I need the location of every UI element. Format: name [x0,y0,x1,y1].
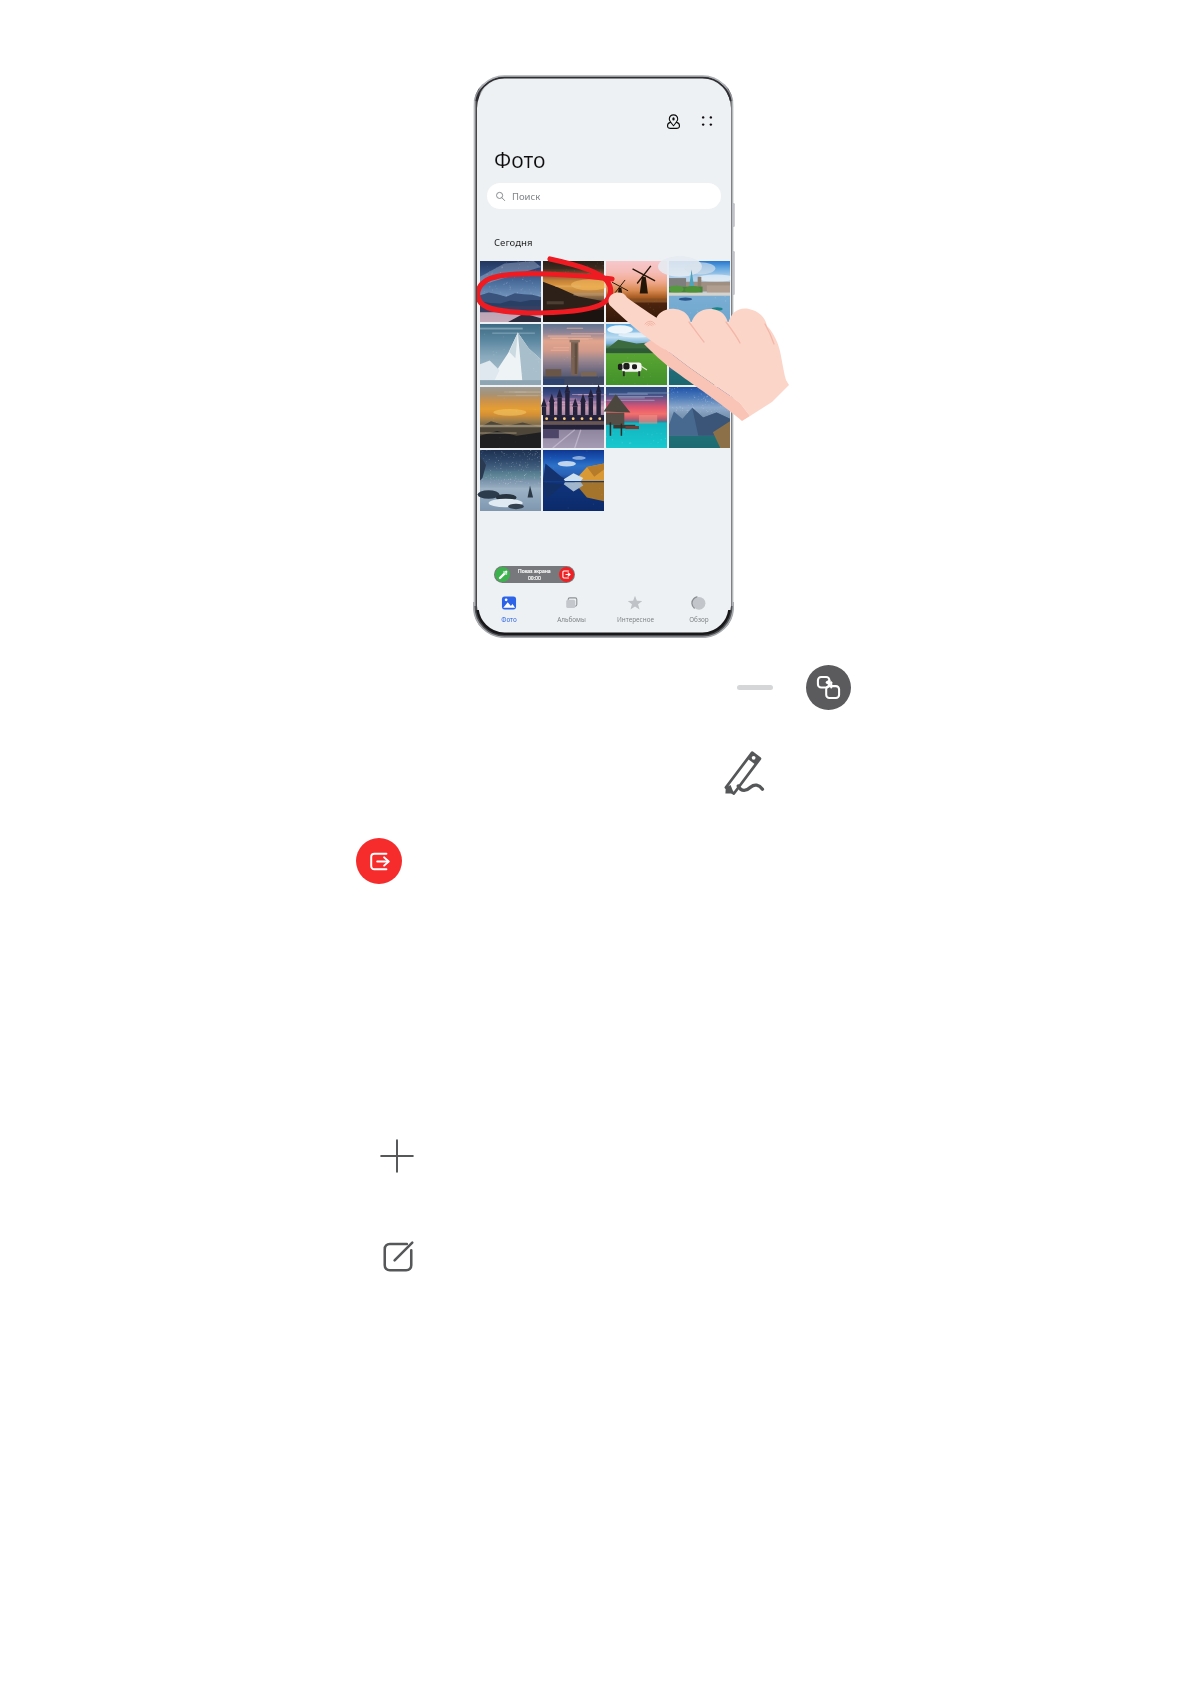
button[interactable]: Обзор [667,594,731,625]
button[interactable]: Map [661,109,685,133]
staticText: Показ экрана [518,568,551,575]
staticText: Интересное [617,615,654,624]
button[interactable]: Screenshot [806,665,851,710]
staticText: Поиск [512,190,541,203]
button[interactable]: Photo ${i + 1} [669,324,730,385]
button[interactable]: Photo ${i + 1} [480,261,541,322]
staticText: 00:00 [528,575,541,582]
button[interactable]: Photo ${i + 1} [543,387,604,448]
button[interactable]: Photo ${i + 1} [669,387,730,448]
button[interactable]: Photo ${i + 1} [543,261,604,322]
button[interactable]: Photo ${i + 1} [480,450,541,511]
button[interactable]: Photo ${i + 1} [606,261,667,322]
button[interactable]: Интересное [603,594,667,625]
staticText: Альбомы [557,615,586,624]
button[interactable]: Альбомы [540,594,603,625]
staticText: Обзор [689,615,709,624]
button[interactable]: Photo ${i + 1} [543,450,604,511]
button[interactable]: Photo ${i + 1} [543,324,604,385]
button[interactable]: Exit [356,838,402,884]
button[interactable]: Photo ${i + 1} [606,324,667,385]
button[interactable]: Photo ${i + 1} [480,324,541,385]
staticText: Сегодня [494,236,533,249]
button[interactable]: Фото [477,594,540,625]
button[interactable]: More options [695,109,719,133]
staticText: Фото [494,146,546,175]
button[interactable]: Photo ${i + 1} [606,387,667,448]
button[interactable]: Поиск [487,183,721,209]
button[interactable]: Photo ${i + 1} [480,387,541,448]
button[interactable]: Показ экрана [494,566,575,583]
staticText: Фото [501,615,517,624]
button[interactable]: Photo ${i + 1} [669,261,730,322]
